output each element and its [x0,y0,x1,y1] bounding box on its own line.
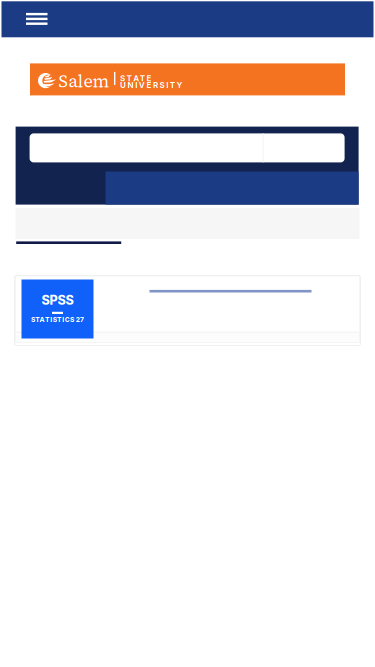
staticText: Salem [58,69,109,93]
button[interactable]: Open navigation menu [1,1,373,37]
staticText: SPSS [41,292,73,308]
staticText: STATISTICS 27 [31,315,84,324]
staticText: UNIVERSITY [120,80,182,90]
button[interactable]: SPSS Statistics 27 [14,275,360,345]
staticText: STATE [120,73,151,83]
button[interactable]: Salem State University home [30,63,345,95]
